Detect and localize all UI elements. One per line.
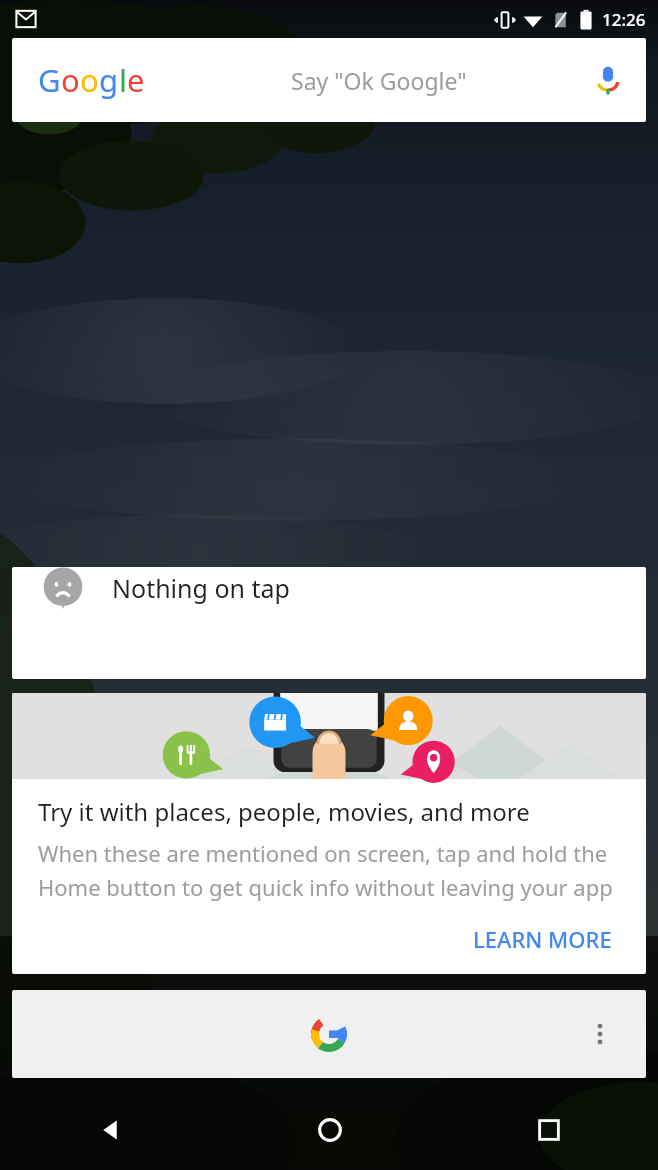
button[interactable]: Back <box>0 1090 220 1170</box>
staticText: 12:26 <box>602 8 646 31</box>
staticText: o <box>61 59 80 101</box>
other: Gmail notification <box>14 7 38 31</box>
button[interactable]: LEARN MORE <box>465 918 620 960</box>
button[interactable]: Nothing on tap <box>12 567 646 679</box>
staticText: G <box>38 59 61 101</box>
button[interactable]: Home <box>220 1090 439 1170</box>
staticText: Nothing on tap <box>112 571 290 605</box>
button[interactable]: More options <box>578 1012 622 1056</box>
staticText: l <box>119 59 127 101</box>
staticText: LEARN MORE <box>473 924 612 954</box>
staticText: Say "Ok Google" <box>291 65 467 96</box>
button[interactable]: Recent apps <box>439 1090 658 1170</box>
staticText: g <box>99 59 119 101</box>
staticText: e <box>127 59 145 101</box>
staticText: When these are mentioned on screen, tap … <box>38 838 620 902</box>
button[interactable]: Google <box>303 1008 355 1060</box>
button[interactable]: Voice search <box>588 60 628 100</box>
staticText: o <box>80 59 99 101</box>
button[interactable]: G <box>12 38 646 122</box>
staticText: Try it with places, people, movies, and … <box>38 795 530 828</box>
